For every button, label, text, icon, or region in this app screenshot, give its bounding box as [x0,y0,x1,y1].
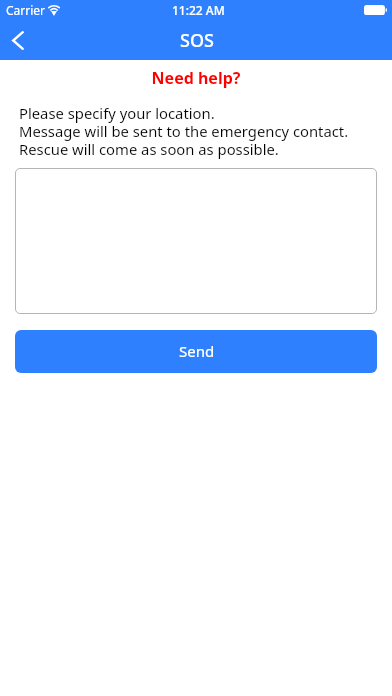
other: Battery [364,5,387,15]
button[interactable]: Send [15,330,377,373]
staticText: Carrier [6,2,46,18]
staticText: Please specify your location. Message wi… [19,103,349,160]
staticText: SOS [180,28,214,53]
staticText: Need help? [0,67,392,89]
staticText: 11:22 AM [172,2,225,18]
button[interactable]: Message input field [15,168,377,314]
button[interactable]: Back [0,20,38,60]
other: Wi-Fi signal [48,4,60,14]
staticText: Send [179,341,215,361]
